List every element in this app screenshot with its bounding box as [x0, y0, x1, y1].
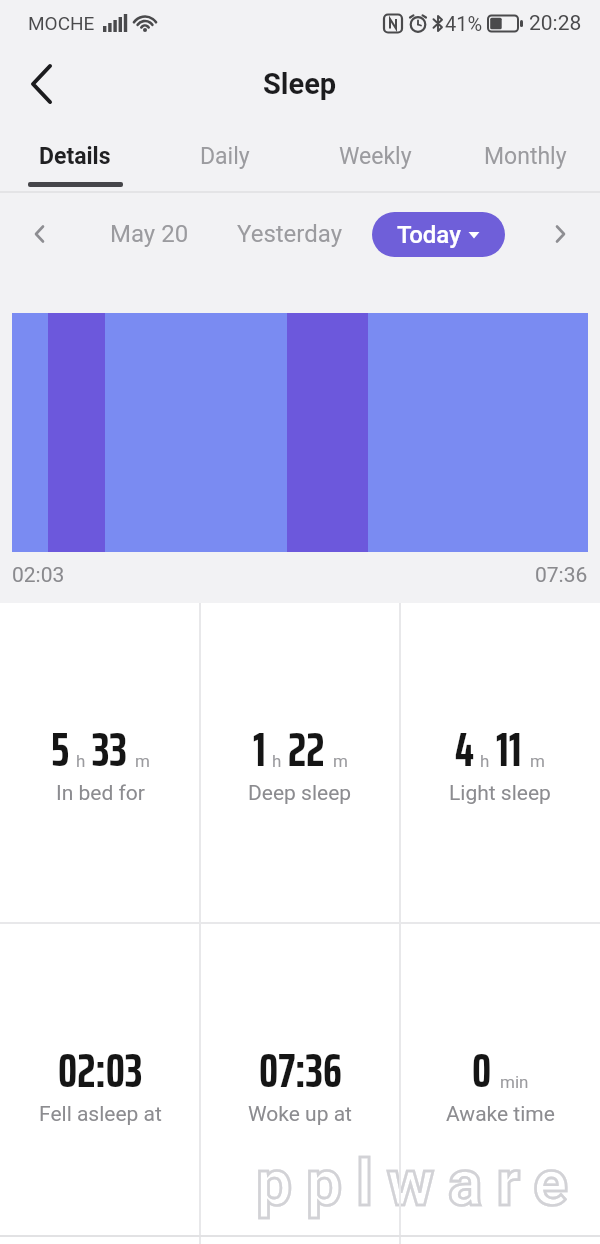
- staticText: Details: [39, 143, 111, 170]
- staticText: h: [76, 751, 86, 771]
- staticText: h: [272, 751, 282, 771]
- staticText: 41%: [445, 12, 483, 35]
- staticText: h: [480, 751, 490, 771]
- staticText: Deep sleep: [248, 781, 352, 806]
- staticText: m: [135, 751, 150, 771]
- staticText: Daily: [200, 143, 250, 170]
- button[interactable]: 07:36: [200, 923, 400, 1244]
- button[interactable]: 1: [200, 603, 400, 923]
- button[interactable]: May 20: [89, 209, 209, 259]
- staticText: Woke up at: [248, 1102, 352, 1127]
- staticText: 02:03: [12, 563, 65, 588]
- button[interactable]: [20, 62, 64, 106]
- button[interactable]: 5: [0, 603, 200, 923]
- staticText: Fell asleep at: [39, 1102, 162, 1127]
- staticText: 07:36: [259, 1033, 342, 1097]
- staticText: May 20: [110, 220, 189, 248]
- staticText: 33: [92, 712, 127, 776]
- button[interactable]: Monthly: [450, 122, 600, 191]
- staticText: 22: [288, 712, 325, 776]
- staticText: Awake time: [446, 1102, 555, 1127]
- staticText: 0: [472, 1033, 492, 1097]
- button[interactable]: Daily: [150, 122, 300, 191]
- staticText: 20:28: [529, 11, 582, 36]
- button[interactable]: 4: [400, 603, 600, 923]
- button[interactable]: Yesterday: [225, 209, 355, 259]
- staticText: min: [500, 1072, 529, 1092]
- staticText: 1: [253, 712, 266, 776]
- staticText: Yesterday: [237, 220, 343, 248]
- staticText: 11: [496, 712, 522, 776]
- staticText: m: [530, 751, 545, 771]
- staticText: Today: [397, 221, 461, 249]
- button[interactable]: Today: [372, 212, 505, 257]
- staticText: Light sleep: [449, 781, 551, 806]
- staticText: Monthly: [484, 143, 567, 170]
- staticText: 02:03: [58, 1033, 143, 1097]
- staticText: pplware: [256, 1146, 582, 1221]
- staticText: 5: [51, 712, 70, 776]
- staticText: 4: [455, 712, 474, 776]
- button[interactable]: 0: [400, 923, 600, 1244]
- staticText: m: [333, 751, 348, 771]
- staticText: Sleep: [263, 67, 337, 101]
- staticText: 07:36: [535, 563, 588, 588]
- button[interactable]: [542, 216, 578, 252]
- button[interactable]: Weekly: [300, 122, 450, 191]
- staticText: MOCHE: [28, 12, 95, 34]
- button[interactable]: Details: [0, 122, 150, 191]
- button[interactable]: [22, 216, 58, 252]
- staticText: In bed for: [56, 781, 145, 806]
- button[interactable]: 02:03: [0, 923, 200, 1244]
- staticText: Weekly: [339, 143, 412, 170]
